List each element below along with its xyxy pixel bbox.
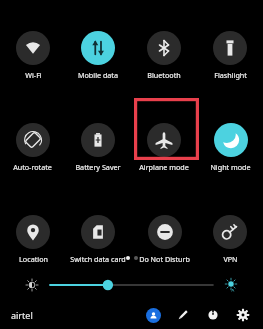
button[interactable]: User [142, 304, 164, 326]
button[interactable]: Night mode [210, 123, 251, 172]
button[interactable]: Brightness slider [50, 275, 213, 295]
button[interactable]: Settings [232, 304, 254, 326]
staticText: Switch data card [70, 254, 126, 264]
button[interactable]: Low brightness [22, 275, 42, 295]
staticText: Bluetooth [147, 70, 181, 80]
staticText: Battery Saver [75, 162, 121, 172]
button[interactable]: Airplane mode [139, 123, 189, 172]
staticText: airtel [11, 309, 33, 321]
button[interactable]: Power [202, 304, 224, 326]
button[interactable]: VPN [213, 215, 247, 264]
staticText: Wi-Fi [25, 70, 42, 80]
button[interactable]: Auto-rotate [13, 123, 52, 172]
button[interactable]: Battery Saver [75, 123, 121, 172]
other: Airplane mode highlighted [134, 98, 199, 160]
staticText: VPN [223, 254, 238, 264]
button[interactable]: Do Not Disturb [139, 215, 190, 264]
staticText: Flashlight [214, 70, 247, 80]
staticText: Location [19, 254, 48, 264]
button[interactable]: Wi-Fi [16, 31, 50, 80]
button[interactable]: Location [16, 215, 50, 264]
staticText: Do Not Disturb [139, 254, 190, 264]
button[interactable]: Bluetooth [147, 31, 181, 80]
button[interactable]: Edit [172, 304, 194, 326]
button[interactable]: Auto brightness [221, 275, 241, 295]
button[interactable]: Mobile data [78, 31, 118, 80]
button[interactable]: Flashlight [213, 31, 247, 80]
staticText: Airplane mode [139, 162, 189, 172]
button[interactable]: Switch data card [70, 215, 126, 264]
staticText: Mobile data [78, 70, 118, 80]
staticText: Night mode [210, 162, 251, 172]
staticText: Auto-rotate [13, 162, 52, 172]
